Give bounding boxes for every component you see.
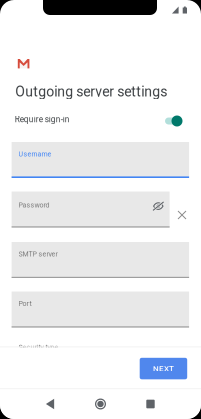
staticText: Security type: [19, 343, 59, 351]
button[interactable]: Clear: [174, 207, 190, 223]
button[interactable]: Username: [12, 142, 189, 178]
staticText: Username: [19, 150, 52, 158]
staticText: Password: [19, 201, 50, 209]
button[interactable]: NEXT: [140, 358, 187, 379]
staticText: Require sign-in: [15, 115, 70, 124]
button[interactable]: Recents: [138, 391, 162, 417]
button[interactable]: Password: [12, 191, 170, 227]
button[interactable]: Home: [88, 391, 112, 417]
button[interactable]: SMTP server: [12, 242, 189, 278]
button[interactable]: Back: [38, 391, 62, 417]
staticText: Outgoing server settings: [15, 83, 167, 100]
staticText: Port: [19, 299, 32, 308]
button[interactable]: Require sign-in: [165, 115, 182, 126]
button[interactable]: Port: [12, 291, 189, 327]
staticText: NEXT: [153, 364, 174, 373]
staticText: SMTP server: [19, 250, 58, 258]
